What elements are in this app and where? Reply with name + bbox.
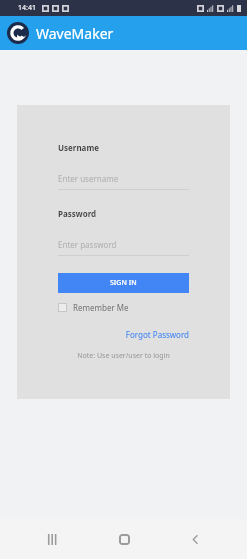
staticText: Password: [58, 208, 97, 219]
button[interactable]: Back: [175, 519, 215, 559]
staticText: Remember Me: [73, 302, 129, 313]
button[interactable]: Enter username: [58, 173, 189, 190]
staticText: 14:41: [18, 3, 36, 13]
button[interactable]: Enter password: [58, 239, 189, 256]
staticText: WaveMaker: [36, 24, 114, 43]
button[interactable]: Recent apps: [32, 519, 72, 559]
button[interactable]: SIGN IN: [58, 273, 189, 293]
staticText: Enter username: [58, 173, 119, 184]
button[interactable]: Forgot Password: [58, 329, 189, 340]
staticText: Note: Use user/user to login: [58, 351, 189, 361]
button[interactable]: Remember Me: [58, 302, 129, 313]
staticText: Username: [58, 142, 99, 153]
staticText: Enter password: [58, 239, 117, 250]
button[interactable]: Home: [104, 519, 144, 559]
staticText: SIGN IN: [110, 278, 137, 288]
